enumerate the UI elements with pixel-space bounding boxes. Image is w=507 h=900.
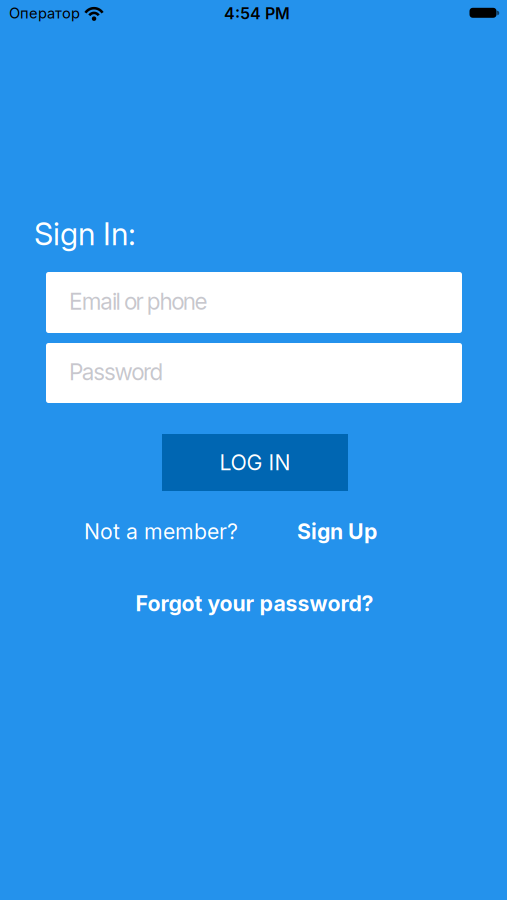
staticText: Sign In: xyxy=(34,216,136,252)
staticText: Not a member? xyxy=(84,519,238,544)
button[interactable]: Sign Up xyxy=(297,519,377,544)
staticText: 4:54 PM xyxy=(224,4,290,23)
staticText: Password xyxy=(69,359,164,385)
button[interactable]: Password xyxy=(46,343,462,403)
staticText: Sign Up xyxy=(297,519,377,544)
staticText: Forgot your password? xyxy=(135,591,373,616)
button[interactable]: LOG IN xyxy=(162,434,348,491)
button[interactable]: Email or phone xyxy=(46,272,462,333)
button[interactable]: Forgot your password? xyxy=(135,591,373,616)
staticText: LOG IN xyxy=(219,450,290,475)
staticText: Оператор xyxy=(9,4,80,22)
staticText: Email or phone xyxy=(69,288,207,315)
